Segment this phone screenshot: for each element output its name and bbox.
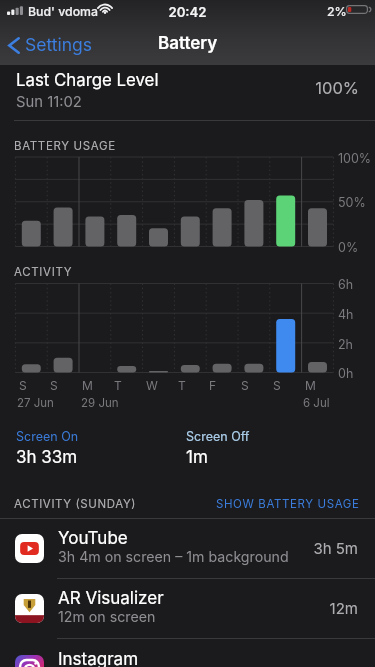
staticText: 2h [338, 337, 354, 352]
staticText: 3h 33m [16, 447, 78, 468]
staticText: 100% [338, 151, 372, 166]
staticText: M [82, 378, 93, 393]
staticText: M [305, 378, 316, 393]
staticText: 0% [338, 240, 359, 255]
button[interactable]: Settings [0, 35, 101, 56]
staticText: Settings [25, 34, 93, 55]
button[interactable]: YouTube [0, 518, 375, 579]
staticText: S [19, 378, 27, 393]
staticText: 12m [0, 599, 358, 617]
staticText: 29 Jun [81, 396, 119, 410]
staticText: ACTIVITY (SUNDAY) [14, 497, 137, 511]
button[interactable]: Instagram [0, 639, 375, 667]
staticText: 2% [327, 4, 347, 19]
staticText: 0h [338, 366, 354, 381]
staticText: 6h [338, 277, 354, 292]
staticText: Battery [158, 33, 218, 54]
staticText: Screen Off [186, 429, 250, 444]
staticText: YouTube [58, 528, 128, 549]
staticText: ACTIVITY [14, 265, 73, 279]
button[interactable]: SHOW BATTERY USAGE [216, 497, 375, 511]
staticText: Instagram [58, 649, 139, 667]
staticText: 3h 4m on screen – 1m background [58, 548, 289, 565]
staticText: Bud' vdoma [28, 4, 98, 19]
button[interactable]: AR Visualizer [0, 578, 375, 639]
staticText: 3h 5m [0, 539, 358, 557]
staticText: T [114, 378, 122, 393]
staticText: 50% [338, 195, 366, 210]
staticText: F [209, 378, 217, 393]
staticText: 6 Jul [303, 396, 330, 410]
staticText: 12m on screen [58, 608, 156, 625]
staticText: AR Visualizer [58, 588, 164, 609]
staticText: SHOW BATTERY USAGE [216, 497, 360, 511]
staticText: Last Charge Level [16, 70, 159, 90]
staticText: Sun 11:02 [16, 93, 82, 111]
staticText: S [273, 378, 281, 393]
staticText: Screen On [16, 429, 79, 444]
staticText: S [241, 378, 249, 393]
staticText: 20:42 [0, 4, 375, 20]
staticText: T [178, 378, 186, 393]
staticText: 100% [0, 78, 359, 98]
staticText: BATTERY USAGE [14, 139, 116, 153]
staticText: 4h [338, 307, 354, 322]
staticText: S [50, 378, 58, 393]
staticText: 27 Jun [17, 396, 54, 410]
staticText: 1m [186, 447, 208, 468]
staticText: W [146, 378, 158, 393]
